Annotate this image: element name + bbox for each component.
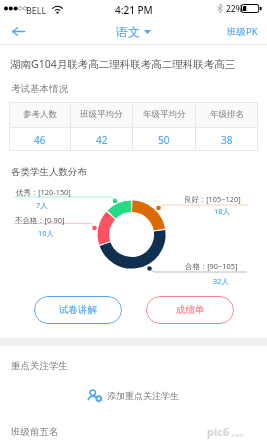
staticText: 湖南G104月联考高二理科联考高二理科联考高三 [10, 57, 236, 71]
staticText: 班级PK [227, 25, 258, 38]
staticText: 不合格：[0-90] [15, 215, 65, 225]
staticText: 42 [96, 133, 108, 147]
staticText: 38 [221, 133, 233, 147]
staticText: 考试基本情况 [11, 83, 68, 95]
staticText: 32人 [213, 276, 229, 286]
staticText: 参考人数 [23, 109, 57, 120]
staticText: 成绩单 [176, 304, 205, 316]
staticText: 10人 [38, 228, 54, 238]
staticText: 4:21 PM [115, 3, 153, 17]
staticText: 22% [226, 3, 243, 15]
staticText: 语文 [116, 24, 140, 39]
staticText: 优秀：[120-150] [16, 187, 71, 197]
staticText: 年级平均分 [143, 109, 186, 120]
button[interactable]: 语文 [110, 21, 157, 42]
button[interactable]: 试卷讲解 [34, 296, 122, 324]
button[interactable]: 成绩单 [146, 296, 234, 324]
staticText: 46 [34, 133, 46, 147]
staticText: 50 [158, 133, 170, 147]
staticText: 7人 [36, 200, 48, 210]
staticText: 试卷讲解 [59, 304, 97, 316]
staticText: 年级排名 [210, 109, 244, 120]
button[interactable]: 班级PK [218, 21, 267, 42]
staticText: 重点关注学生 [11, 360, 68, 372]
staticText: 各类学生人数分布 [11, 166, 87, 178]
button[interactable]: Back [6, 19, 30, 43]
staticText: 班级平均分 [80, 109, 123, 120]
staticText: 合格：[90~105] [185, 261, 238, 271]
button[interactable]: 添加重点关注学生 [86, 387, 179, 404]
staticText: BELL [26, 4, 47, 16]
staticText: 班级前五名 [11, 426, 59, 438]
staticText: pic6 [207, 424, 230, 439]
staticText: 18人 [214, 206, 230, 216]
staticText: .com [230, 431, 244, 439]
staticText: 添加重点关注学生 [107, 390, 179, 401]
staticText: 良好：[105~120] [184, 194, 241, 204]
